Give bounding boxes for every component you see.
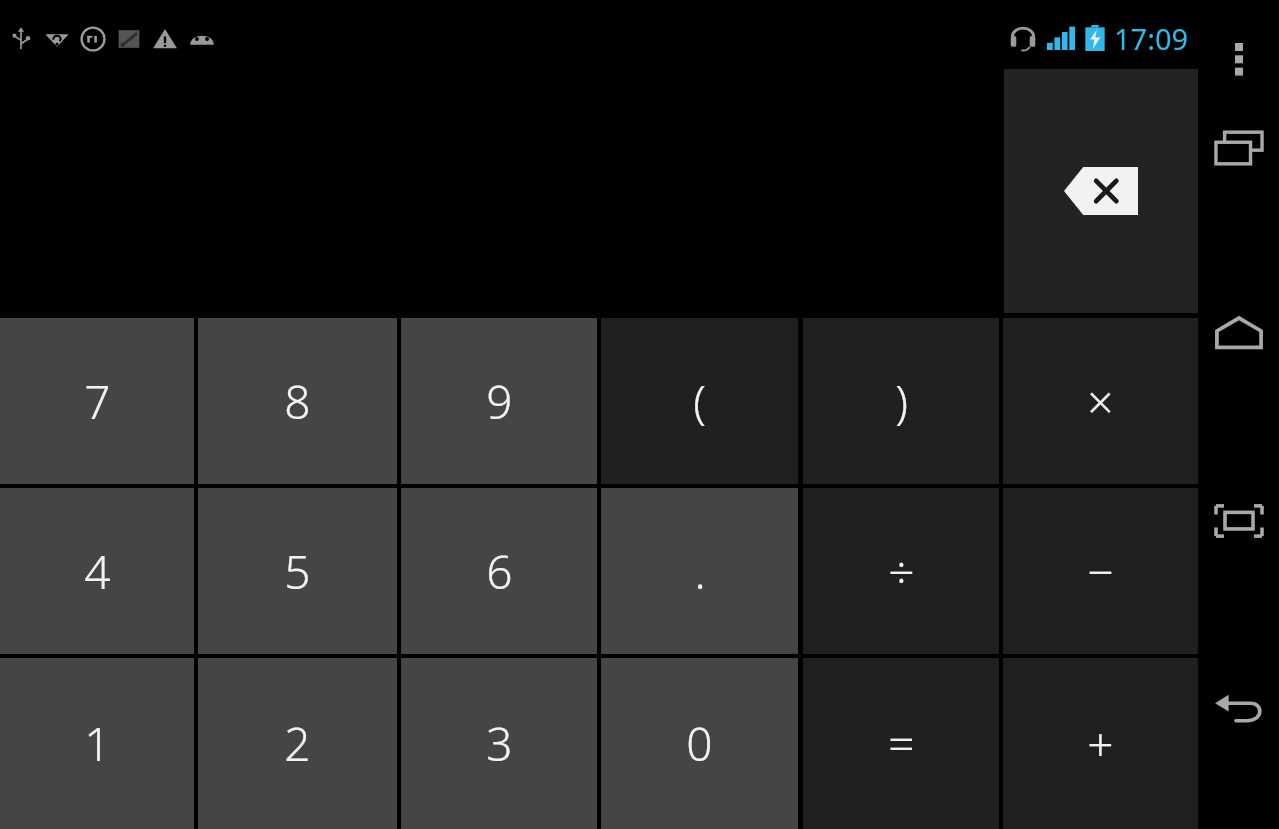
- button[interactable]: (: [601, 318, 798, 484]
- staticText: ÷: [888, 540, 915, 603]
- staticText: 1: [84, 712, 111, 775]
- button[interactable]: 0: [601, 658, 798, 829]
- button[interactable]: Screenshot: [1207, 485, 1271, 557]
- staticText: 8: [284, 370, 311, 433]
- staticText: 0: [686, 712, 713, 775]
- staticText: −: [1087, 540, 1114, 603]
- button[interactable]: Recent apps: [1207, 112, 1271, 184]
- button[interactable]: 6: [401, 488, 597, 654]
- button[interactable]: 1: [0, 658, 194, 829]
- staticText: 5: [284, 540, 311, 603]
- button[interactable]: More options: [1217, 30, 1261, 88]
- staticText: 2: [284, 712, 311, 775]
- staticText: +: [1087, 712, 1114, 775]
- staticText: ): [895, 370, 908, 433]
- button[interactable]: 2: [198, 658, 397, 829]
- button[interactable]: 7: [0, 318, 194, 484]
- button[interactable]: .: [601, 488, 798, 654]
- staticText: =: [888, 712, 915, 775]
- button[interactable]: Home: [1207, 297, 1271, 369]
- button[interactable]: Delete: [1064, 167, 1138, 215]
- button[interactable]: 3: [401, 658, 597, 829]
- staticText: ×: [1087, 370, 1114, 433]
- staticText: 17:09: [1114, 19, 1189, 58]
- button[interactable]: ): [803, 318, 999, 484]
- staticText: 4: [84, 540, 111, 603]
- staticText: .: [694, 540, 706, 603]
- button[interactable]: 8: [198, 318, 397, 484]
- button[interactable]: Plus: [1003, 658, 1198, 829]
- staticText: 7: [84, 370, 111, 433]
- staticText: (: [693, 370, 706, 433]
- staticText: 3: [486, 712, 513, 775]
- button[interactable]: Divide: [803, 488, 999, 654]
- button[interactable]: Back: [1207, 671, 1271, 743]
- button[interactable]: 4: [0, 488, 194, 654]
- button[interactable]: 5: [198, 488, 397, 654]
- button[interactable]: Equals: [803, 658, 999, 829]
- button[interactable]: Multiply: [1003, 318, 1198, 484]
- button[interactable]: 9: [401, 318, 597, 484]
- staticText: 6: [486, 540, 513, 603]
- staticText: 9: [486, 370, 513, 433]
- button[interactable]: Minus: [1003, 488, 1198, 654]
